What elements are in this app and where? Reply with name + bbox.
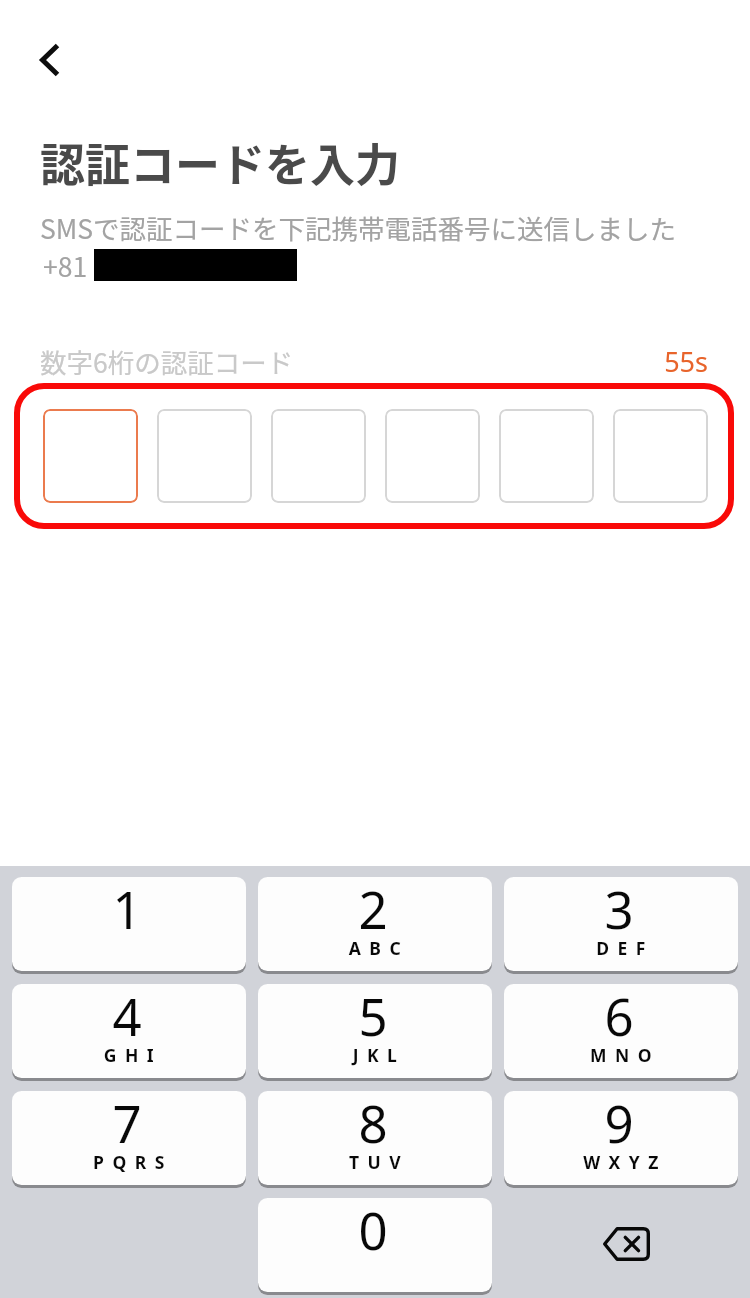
staticText: WXYZ: [508, 1150, 738, 1174]
staticText: 認証コードを入力: [40, 130, 401, 195]
staticText: +81: [43, 246, 94, 284]
staticText: 5: [258, 984, 490, 1050]
staticText: MNO: [508, 1043, 738, 1067]
button[interactable]: Code digit 1: [43, 409, 138, 503]
button[interactable]: Code digit 4: [385, 409, 480, 503]
button[interactable]: Back: [20, 30, 80, 90]
staticText: 4: [12, 984, 244, 1050]
staticText: 8: [258, 1091, 490, 1157]
button[interactable]: 5: [258, 984, 492, 1078]
staticText: 9: [504, 1091, 736, 1157]
button[interactable]: Code digit 6: [613, 409, 708, 503]
button[interactable]: 7: [12, 1091, 246, 1185]
staticText: DEF: [508, 936, 738, 960]
staticText: ABC: [262, 936, 492, 960]
button[interactable]: Code digit 3: [271, 409, 366, 503]
staticText: 3: [504, 877, 736, 943]
button[interactable]: 0: [258, 1198, 492, 1292]
staticText: 7: [12, 1091, 244, 1157]
staticText: JKL: [262, 1043, 492, 1067]
button[interactable]: Backspace: [504, 1198, 738, 1292]
staticText: 55s: [620, 343, 708, 380]
button[interactable]: 8: [258, 1091, 492, 1185]
staticText: 0: [258, 1198, 490, 1264]
staticText: TUV: [262, 1150, 492, 1174]
button[interactable]: Code digit 5: [499, 409, 594, 503]
button[interactable]: 1: [12, 877, 246, 971]
staticText: 6: [504, 984, 736, 1050]
button[interactable]: 3: [504, 877, 738, 971]
staticText: 数字6桁の認証コード: [40, 342, 294, 380]
staticText: 2: [258, 877, 490, 943]
button[interactable]: 6: [504, 984, 738, 1078]
button[interactable]: 4: [12, 984, 246, 1078]
staticText: 1: [12, 877, 244, 943]
button[interactable]: Code digit 2: [157, 409, 252, 503]
button[interactable]: 2: [258, 877, 492, 971]
button[interactable]: 9: [504, 1091, 738, 1185]
staticText: GHI: [16, 1043, 246, 1067]
staticText: SMSで認証コードを下記携帯電話番号に送信しました: [40, 208, 677, 246]
staticText: PQRS: [16, 1150, 246, 1174]
